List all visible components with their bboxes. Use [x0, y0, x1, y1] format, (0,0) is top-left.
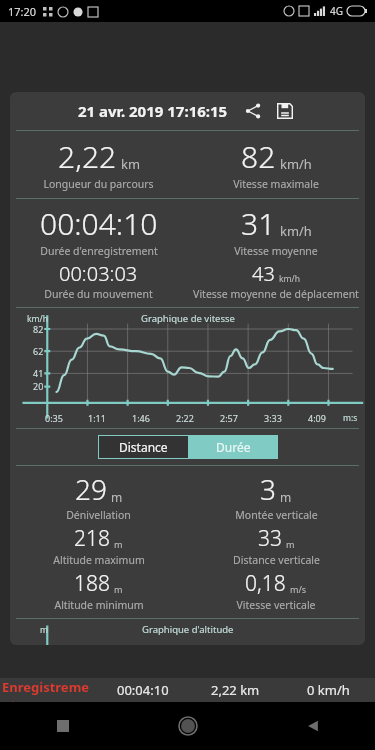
staticText: 41 — [33, 367, 44, 379]
staticText: 2,22 km — [211, 681, 260, 699]
staticText: 29 — [75, 470, 107, 508]
staticText: 3:33 — [264, 412, 282, 424]
staticText: km/h — [279, 273, 301, 285]
staticText: m:s — [343, 412, 358, 424]
staticText: 2:57 — [220, 412, 238, 424]
staticText: Graphique d'altitude — [142, 623, 234, 636]
staticText: Vitesse verticale — [236, 598, 316, 612]
button[interactable]: Back — [250, 702, 375, 750]
staticText: Vitesse moyenne de déplacement — [193, 287, 359, 301]
staticText: 00:04:10 — [117, 681, 169, 699]
staticText: 1:11 — [88, 412, 106, 424]
staticText: Vitesse moyenne — [234, 244, 318, 258]
staticText: Longueur du parcours — [43, 177, 154, 191]
button[interactable]: Home — [125, 702, 250, 750]
staticText: m — [114, 538, 123, 550]
staticText: Distance — [119, 439, 168, 455]
staticText: 0 km/h — [307, 681, 350, 699]
staticText: 1:46 — [132, 412, 150, 424]
staticText: 43 — [252, 260, 275, 287]
staticText: Montée verticale — [235, 508, 318, 522]
staticText: Altitude minimum — [54, 598, 144, 612]
staticText: km/h — [27, 313, 48, 325]
staticText: Distance verticale — [233, 553, 320, 567]
staticText: km/h — [280, 155, 312, 173]
staticText: 62 — [33, 345, 44, 357]
staticText: Durée du mouvement — [44, 287, 153, 301]
staticText: 4G — [330, 4, 343, 18]
staticText: 00:03:03 — [59, 260, 138, 287]
staticText: m — [280, 489, 292, 505]
staticText: 2,22 — [58, 136, 117, 177]
staticText: 33 — [258, 524, 282, 553]
staticText: 00:04:10 — [40, 203, 158, 244]
staticText: 4:09 — [308, 412, 326, 424]
staticText: 0,18 — [245, 569, 286, 598]
staticText: 188 — [74, 569, 110, 598]
button[interactable]: Distance — [98, 435, 188, 459]
button[interactable]: Recent apps — [0, 702, 125, 750]
staticText: Durée — [216, 439, 251, 455]
staticText: Enregistrement — [2, 678, 96, 702]
staticText: 31 — [241, 203, 276, 244]
staticText: 0:35 — [45, 412, 63, 424]
staticText: m — [40, 624, 48, 636]
staticText: 20 — [33, 380, 44, 392]
staticText: Altitude maximum — [53, 553, 145, 567]
staticText: 21 avr. 2019 17:16:15 — [78, 101, 228, 121]
staticText: km — [121, 155, 140, 173]
button[interactable]: Save — [272, 98, 298, 124]
button[interactable]: Durée — [188, 435, 278, 459]
staticText: 82 — [241, 136, 276, 177]
staticText: Dénivellation — [66, 508, 131, 522]
staticText: Durée d'enregistrement — [40, 244, 158, 258]
button[interactable]: Share — [240, 98, 266, 124]
staticText: 82 — [33, 323, 44, 335]
staticText: m/s — [290, 583, 307, 595]
staticText: 17:20 — [8, 4, 37, 19]
staticText: Graphique de vitesse — [141, 312, 235, 325]
staticText: m — [111, 489, 123, 505]
staticText: 2:22 — [176, 412, 194, 424]
staticText: m — [114, 583, 123, 595]
staticText: km/h — [280, 222, 312, 240]
staticText: Vitesse maximale — [233, 177, 319, 191]
staticText: 3 — [260, 470, 276, 508]
staticText: 218 — [74, 524, 110, 553]
staticText: m — [286, 538, 295, 550]
